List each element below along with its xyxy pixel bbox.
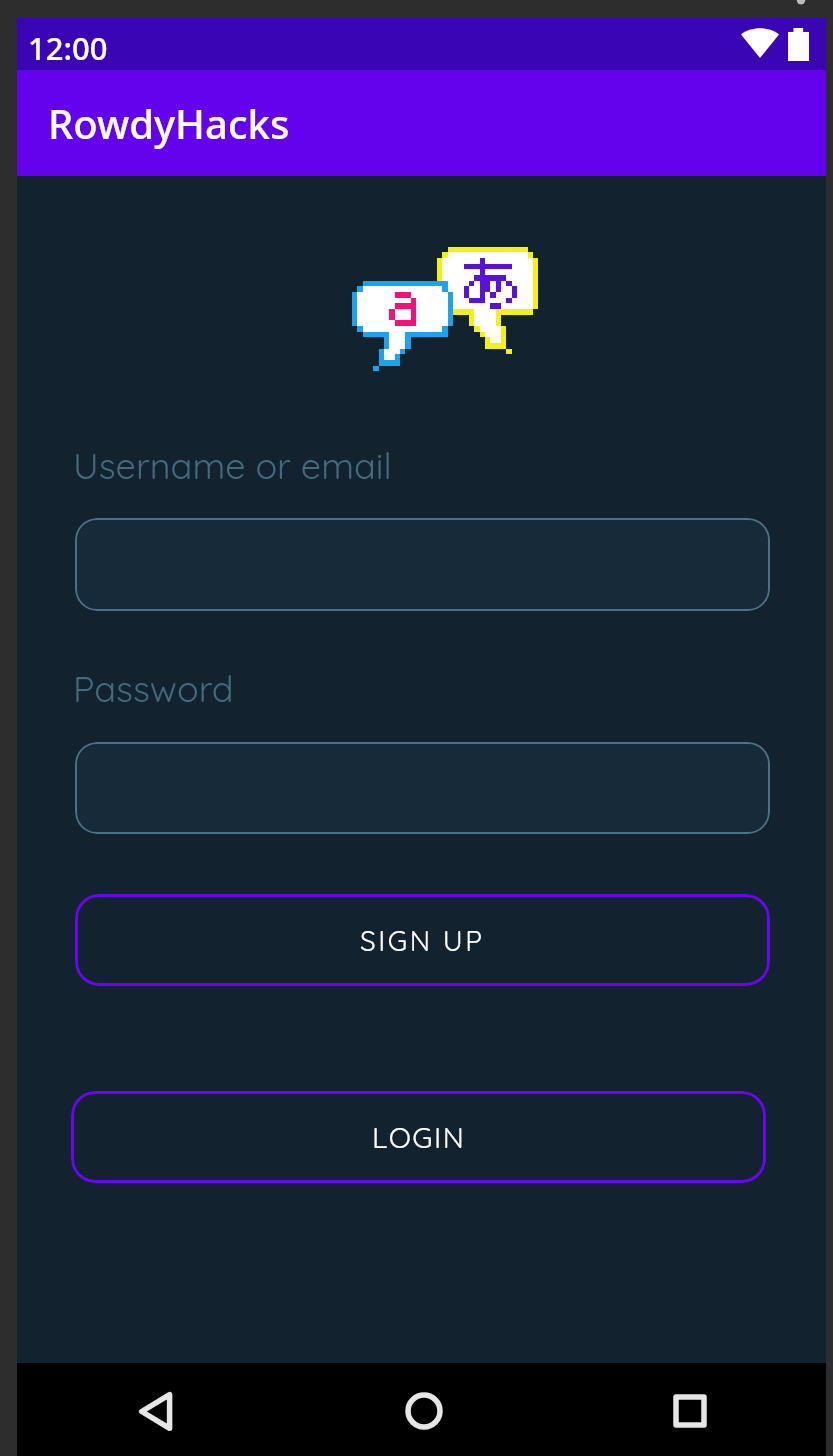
button[interactable]: LOGIN xyxy=(71,1091,766,1183)
button[interactable]: Home xyxy=(405,1392,443,1430)
button[interactable]: Recents xyxy=(673,1394,707,1428)
staticText: Password xyxy=(73,666,234,711)
staticText: 12:00 xyxy=(28,27,108,69)
staticText: Username or email xyxy=(73,443,392,488)
staticText: SIGN UP xyxy=(360,923,485,958)
button[interactable]: Back xyxy=(139,1392,173,1431)
button[interactable]: SIGN UP xyxy=(75,894,770,986)
button[interactable] xyxy=(75,742,770,834)
button[interactable] xyxy=(75,518,770,611)
staticText: LOGIN xyxy=(372,1119,466,1155)
staticText: RowdyHacks xyxy=(48,96,290,150)
